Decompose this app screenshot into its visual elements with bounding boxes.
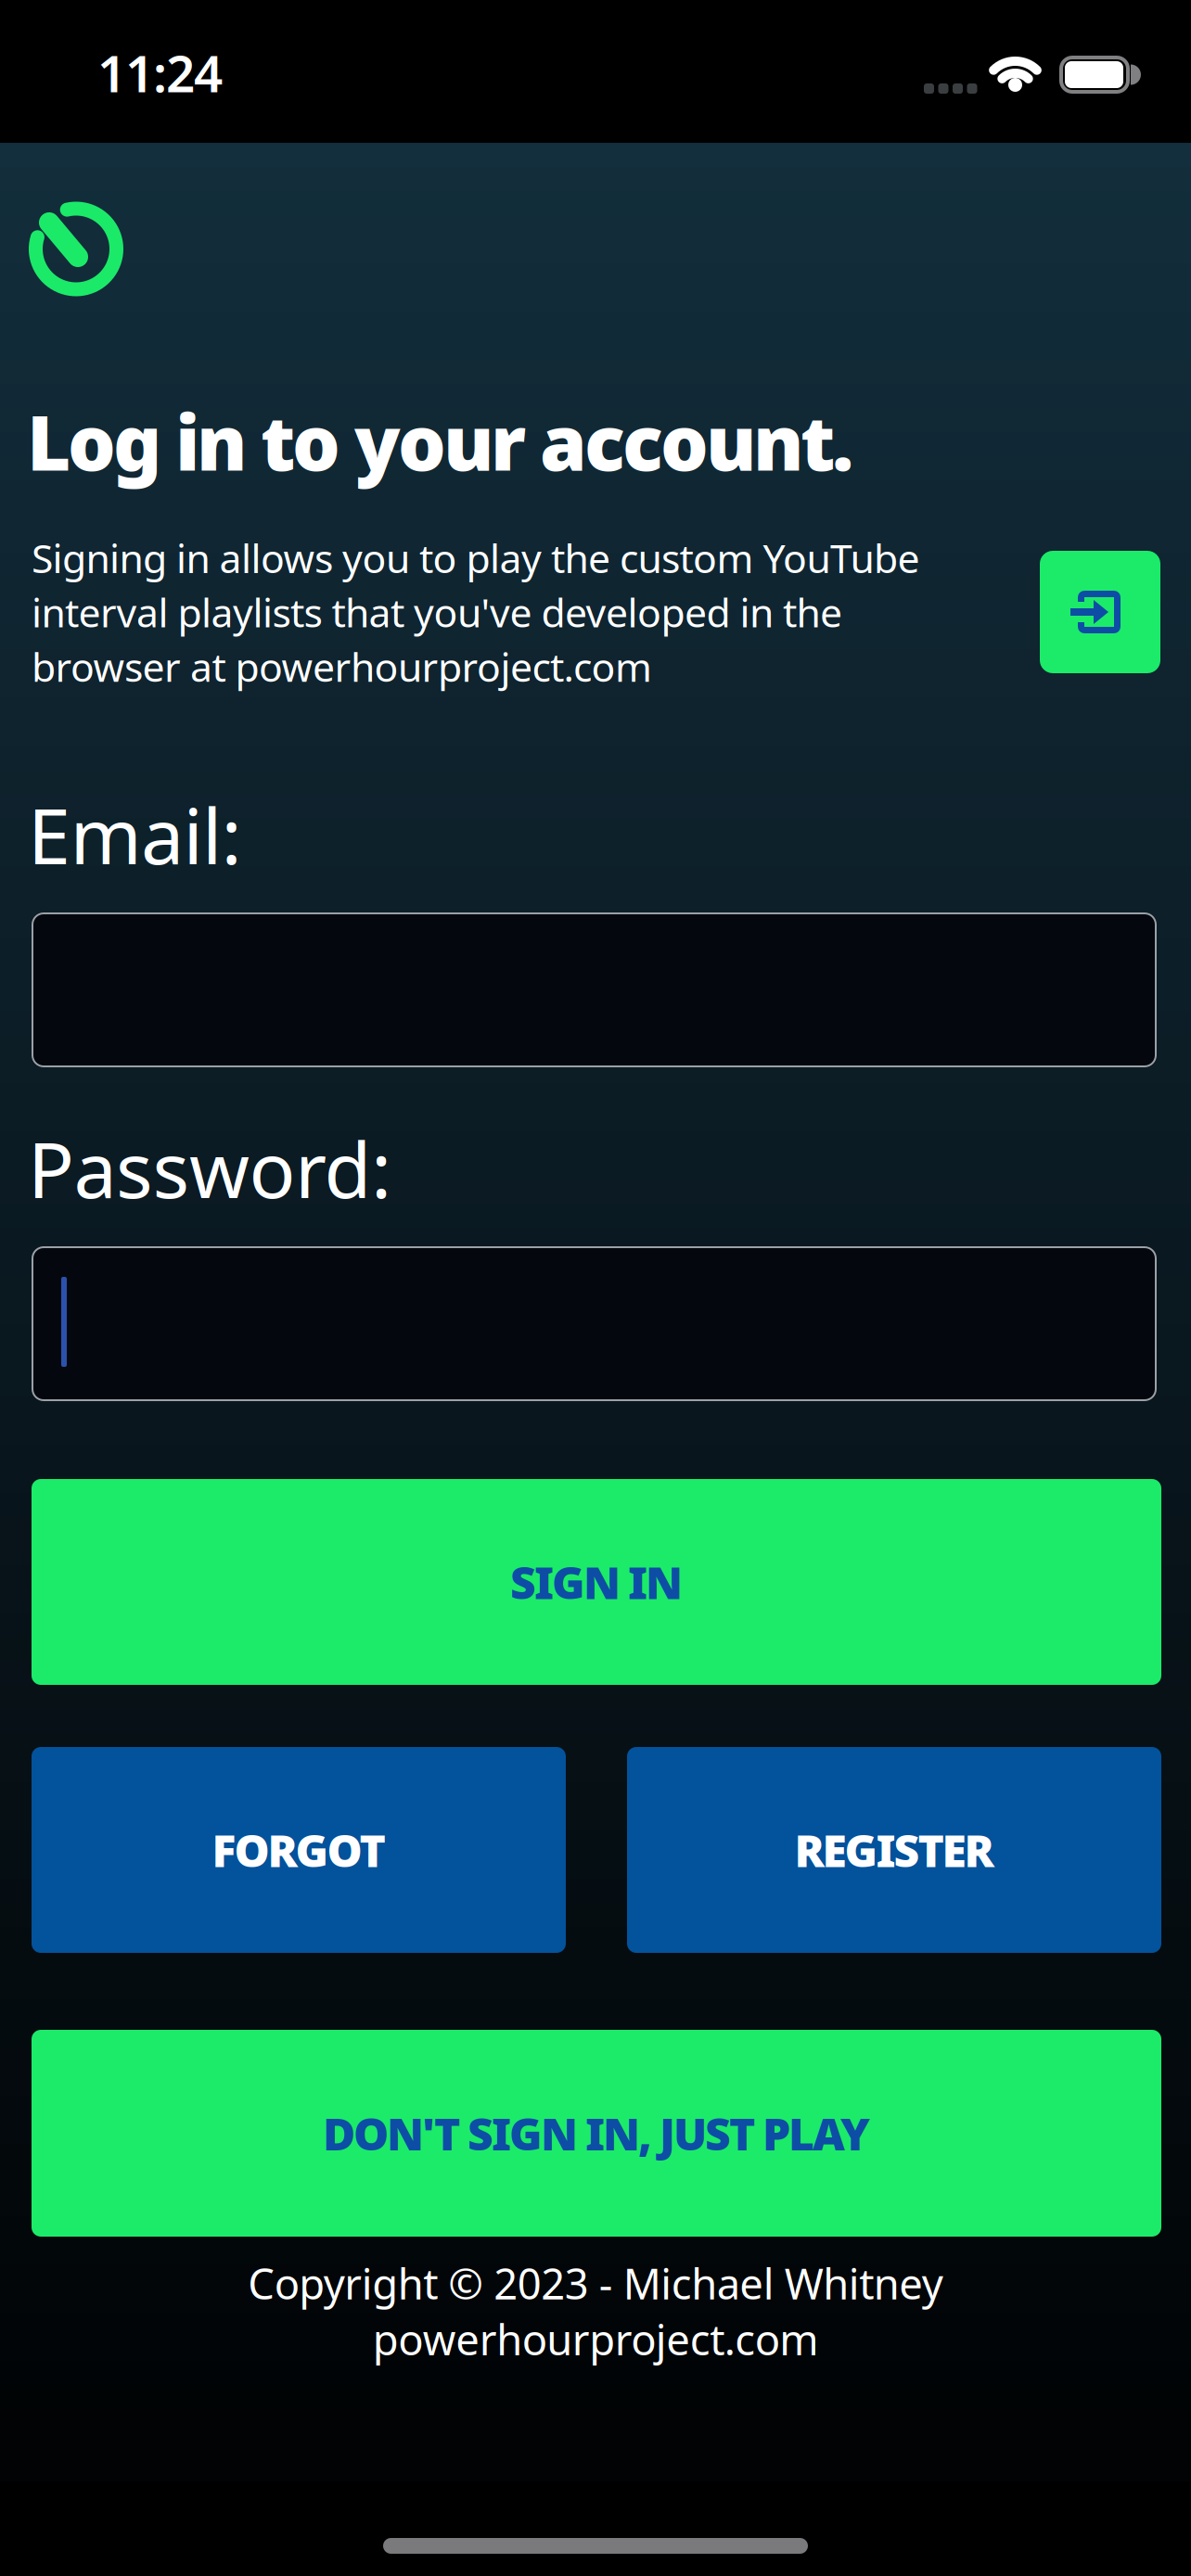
staticText: 11:24 [97, 39, 223, 106]
staticText: Password: [28, 1117, 391, 1219]
staticText: SIGN IN [510, 1552, 683, 1611]
staticText: Signing in allows you to play the custom… [32, 531, 920, 584]
staticText: powerhourproject.com [373, 2311, 818, 2367]
staticText: Email: [28, 784, 242, 885]
button[interactable]: FORGOT [32, 1747, 566, 1953]
button[interactable]: Sign in [1040, 551, 1160, 673]
staticText: browser at powerhourproject.com [32, 640, 652, 693]
staticText: interval playlists that you've developed… [32, 586, 842, 638]
staticText: FORGOT [212, 1820, 385, 1879]
button[interactable]: Password [32, 1246, 1157, 1401]
staticText: REGISTER [794, 1820, 994, 1879]
staticText: Copyright © 2023 - Michael Whitney [248, 2255, 943, 2311]
button[interactable]: Email [32, 912, 1157, 1067]
button[interactable]: DON'T SIGN IN, JUST PLAY [32, 2030, 1161, 2237]
button[interactable]: REGISTER [627, 1747, 1161, 1953]
staticText: Log in to your account. [27, 391, 854, 491]
staticText: DON'T SIGN IN, JUST PLAY [323, 2104, 870, 2163]
button[interactable]: SIGN IN [32, 1479, 1161, 1685]
